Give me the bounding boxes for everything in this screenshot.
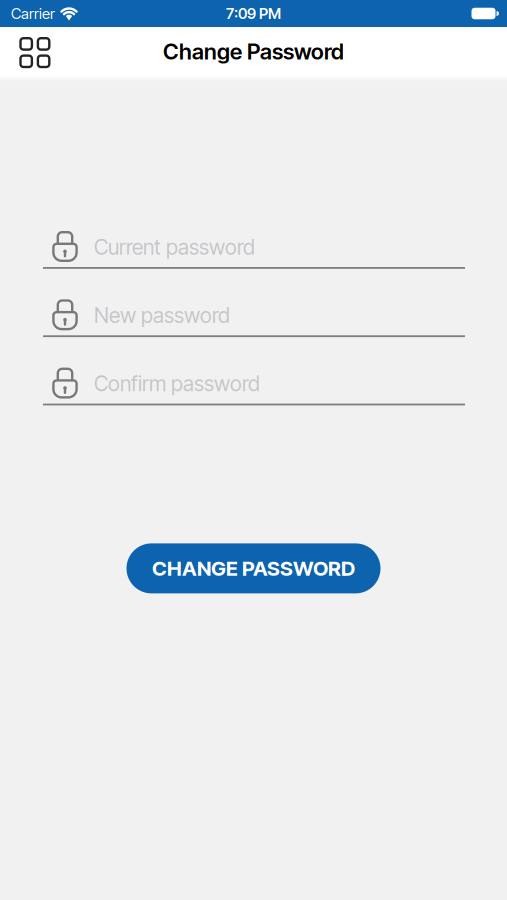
button[interactable]: New password — [43, 299, 465, 337]
button[interactable]: Menu — [19, 35, 51, 67]
staticText: CHANGE PASSWORD — [152, 556, 355, 581]
staticText: 7:09 PM — [226, 4, 281, 22]
button[interactable]: Confirm password — [43, 368, 465, 405]
button[interactable]: Current password — [43, 231, 465, 269]
staticText: New password — [94, 303, 230, 328]
staticText: Confirm password — [94, 371, 260, 396]
staticText: Change Password — [163, 38, 344, 65]
staticText: Current password — [94, 234, 255, 260]
button[interactable]: CHANGE PASSWORD — [126, 543, 380, 593]
staticText: Carrier — [11, 4, 55, 22]
